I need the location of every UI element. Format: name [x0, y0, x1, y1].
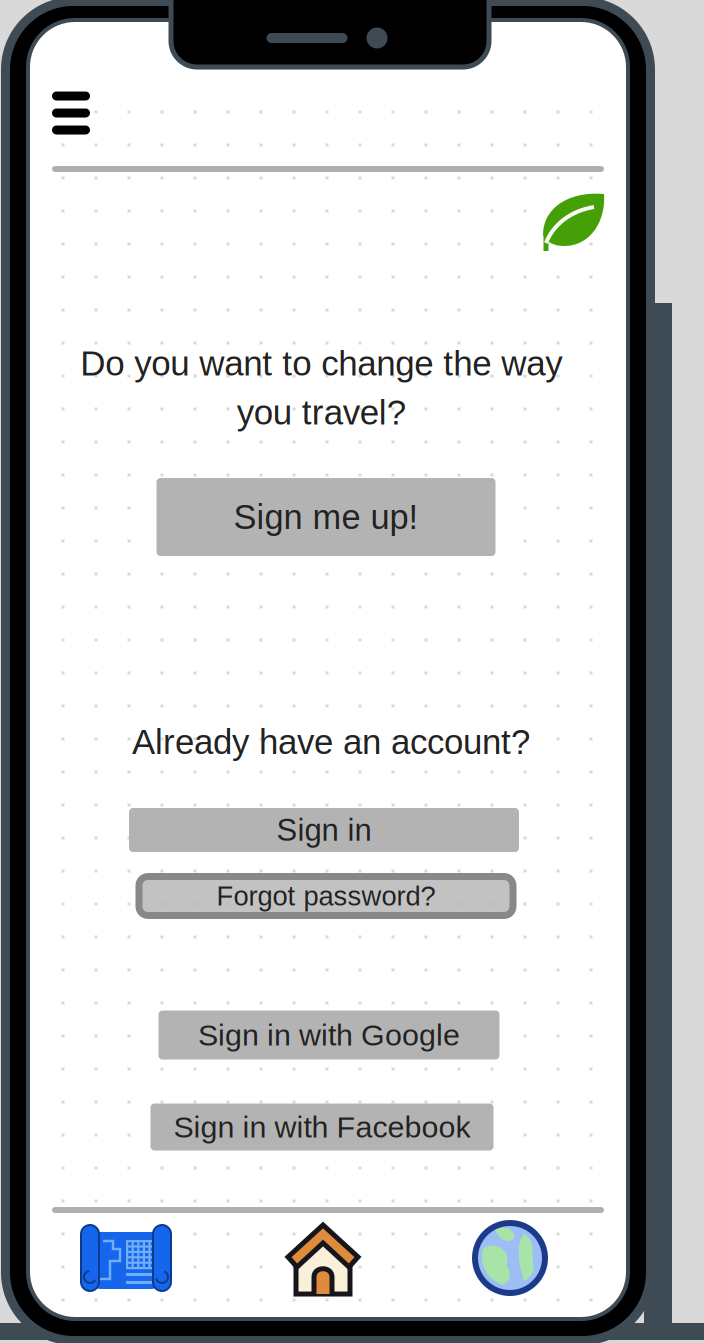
staticText: Sign in with Google: [198, 1018, 460, 1052]
button[interactable]: Forgot password?: [139, 876, 513, 915]
button[interactable]: Home: [284, 1221, 362, 1295]
staticText: Do you want to change the way you travel…: [80, 344, 562, 432]
staticText: Already have an account?: [132, 723, 530, 761]
button[interactable]: Sign in: [129, 808, 519, 852]
staticText: Sign in with Facebook: [173, 1110, 470, 1144]
button[interactable]: Menu: [43, 82, 99, 144]
button[interactable]: Explore: [473, 1221, 547, 1295]
button[interactable]: Blueprints: [81, 1225, 171, 1291]
button[interactable]: Sign me up!: [156, 478, 495, 556]
staticText: Sign me up!: [233, 498, 418, 536]
button[interactable]: Sign in with Facebook: [150, 1103, 493, 1150]
staticText: Sign in: [276, 813, 371, 847]
button[interactable]: Sign in with Google: [158, 1010, 499, 1059]
staticText: Forgot password?: [216, 881, 435, 911]
